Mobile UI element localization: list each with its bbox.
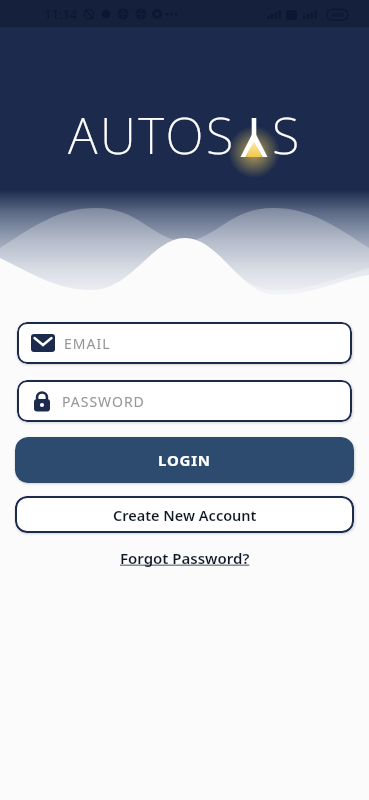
button[interactable]: Create New Account — [15, 496, 354, 533]
staticText: LOGIN — [158, 450, 211, 470]
staticText: Create New Account — [113, 505, 257, 525]
button[interactable]: Forgot Password? — [120, 548, 250, 568]
staticText: S — [272, 101, 302, 169]
staticText: PASSWORD — [62, 392, 145, 411]
button[interactable]: PASSWORD — [17, 380, 352, 422]
staticText: Forgot Password? — [120, 548, 250, 568]
button[interactable]: LOGIN — [15, 437, 354, 483]
staticText: AUTOS — [68, 101, 236, 169]
staticText: EMAIL — [64, 334, 111, 353]
button[interactable]: EMAIL — [17, 322, 352, 364]
